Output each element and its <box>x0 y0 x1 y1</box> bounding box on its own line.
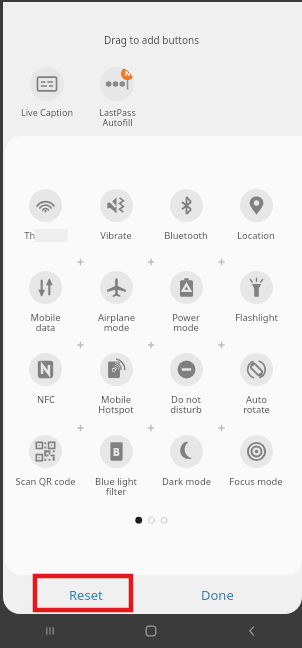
button[interactable]: Flashlight <box>221 271 291 324</box>
staticText: Flashlight <box>235 311 278 324</box>
button[interactable]: Recents <box>0 614 100 648</box>
staticText: Focus mode <box>229 475 283 488</box>
staticText: Power mode <box>172 311 200 334</box>
button[interactable]: Back <box>201 614 302 648</box>
staticText: Th <box>24 229 68 242</box>
button[interactable]: Reset <box>0 575 151 614</box>
button[interactable]: Scan QR code <box>10 435 81 488</box>
staticText: Live Caption <box>21 106 73 118</box>
staticText: Done <box>201 586 234 604</box>
staticText: B <box>113 445 120 459</box>
staticText: Blue light filter <box>95 475 137 498</box>
button[interactable]: NFC <box>10 353 81 406</box>
button[interactable]: Vibrate <box>81 189 151 242</box>
button[interactable]: Live Caption <box>12 67 82 118</box>
staticText: Bluetooth <box>164 229 208 242</box>
button[interactable]: Home <box>100 614 201 648</box>
staticText: Mobile Hotspot <box>98 393 134 416</box>
button[interactable]: Mobile data <box>10 271 81 334</box>
staticText: NFC <box>37 393 55 406</box>
button[interactable]: Airplane mode <box>81 271 151 334</box>
button[interactable]: Bluetooth <box>151 189 221 242</box>
button[interactable]: Auto rotate <box>221 353 291 416</box>
staticText: Reset <box>69 586 103 604</box>
staticText: Scan QR code <box>15 475 76 488</box>
staticText: N <box>125 69 131 79</box>
button[interactable]: B <box>81 435 151 498</box>
staticText: Mobile data <box>30 311 61 334</box>
staticText: LastPass Autofill <box>99 106 136 129</box>
button[interactable]: Location <box>221 189 291 242</box>
button[interactable]: Th <box>10 189 81 242</box>
button[interactable]: Do not disturb <box>151 353 221 416</box>
button[interactable]: Mobile Hotspot <box>81 353 151 416</box>
button[interactable]: Dark mode <box>151 435 221 488</box>
staticText: Do not disturb <box>170 393 202 416</box>
button[interactable]: N <box>82 67 152 129</box>
button[interactable]: Done <box>151 575 302 614</box>
staticText: Auto rotate <box>243 393 270 416</box>
button[interactable]: Power mode <box>151 271 221 334</box>
staticText: Vibrate <box>100 229 132 242</box>
button[interactable]: Focus mode <box>221 435 291 488</box>
staticText: Airplane mode <box>98 311 135 334</box>
staticText: Location <box>237 229 275 242</box>
staticText: Drag to add buttons <box>104 33 199 47</box>
staticText: Dark mode <box>162 475 211 488</box>
